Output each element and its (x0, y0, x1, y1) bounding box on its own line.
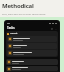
button[interactable]: Search (50, 27, 53, 30)
button[interactable] (6, 66, 58, 71)
staticText: Tasks (7, 26, 15, 30)
button[interactable] (6, 59, 58, 65)
staticText: Sort, split and act on your tasks neatly (2, 12, 46, 15)
staticText: Methodical (2, 2, 34, 10)
button[interactable] (7, 36, 57, 42)
button[interactable]: More options (54, 27, 57, 30)
button[interactable] (7, 43, 57, 49)
button[interactable] (7, 50, 57, 56)
staticText: Urgent (10, 32, 18, 35)
